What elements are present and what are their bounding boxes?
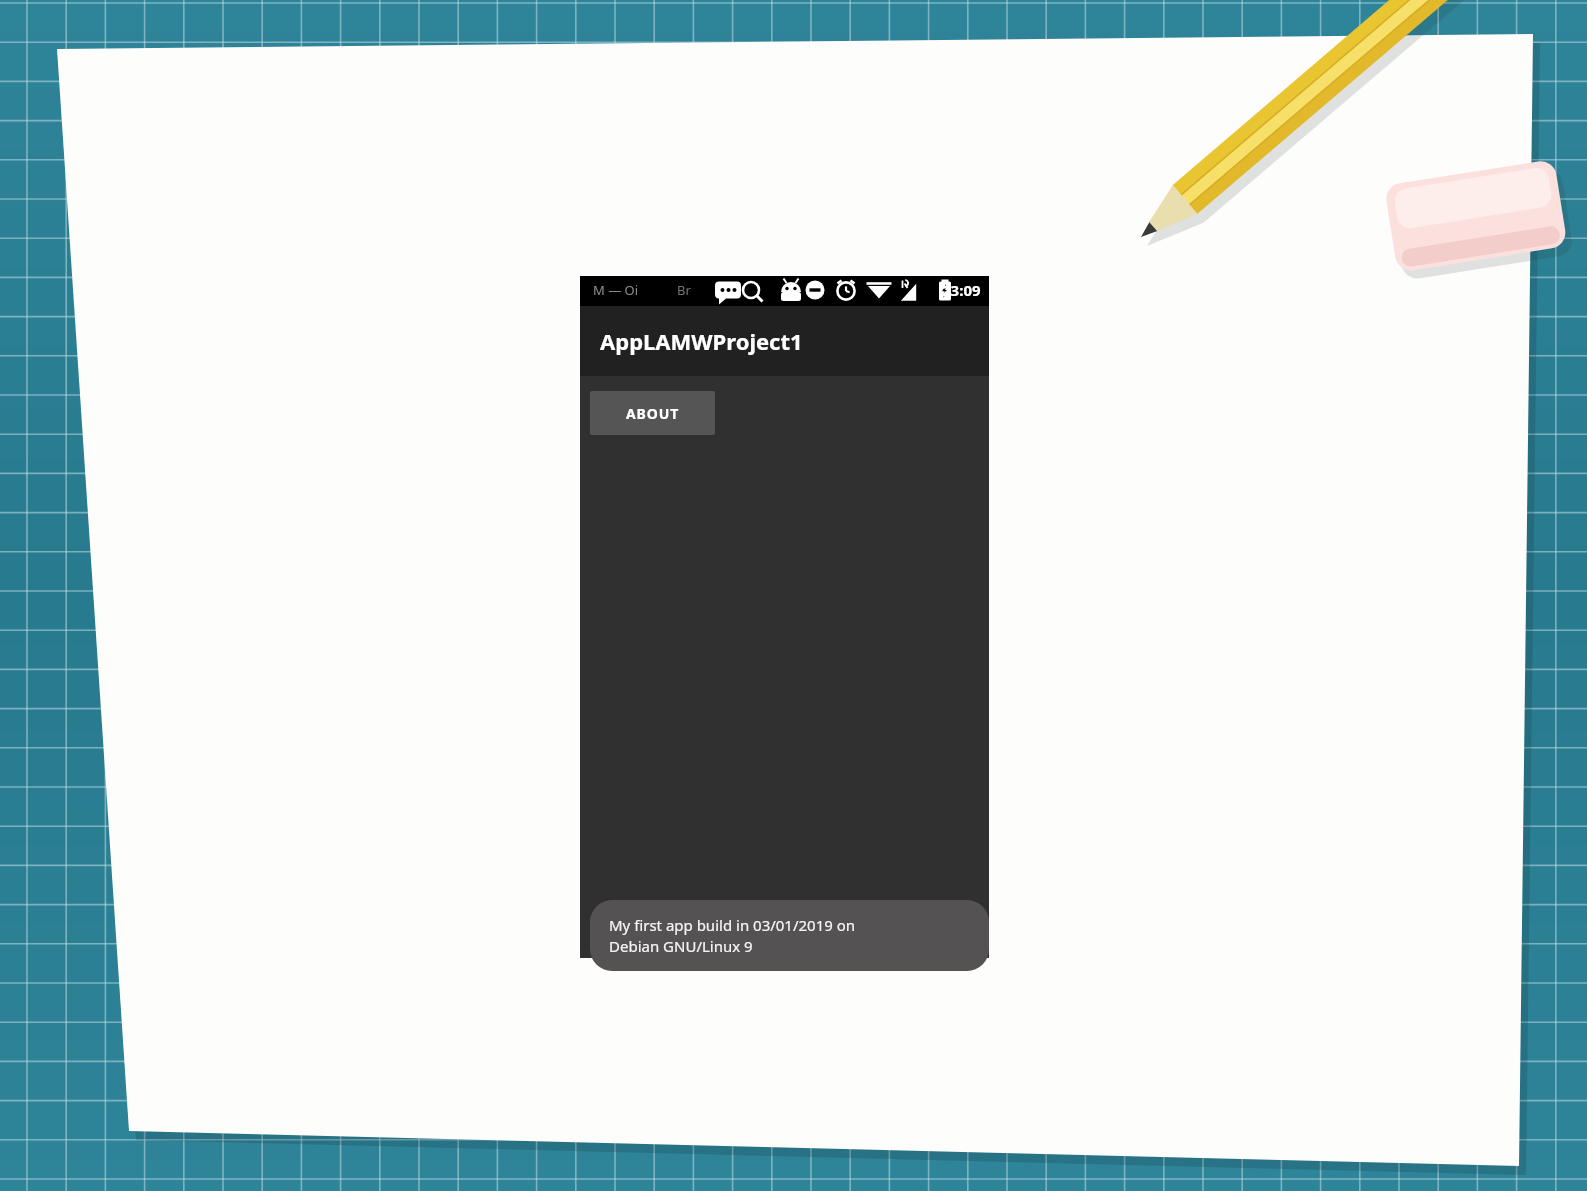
- staticText: My first app build in 03/01/2019 on Debi…: [609, 915, 856, 957]
- staticText: ABOUT: [626, 404, 680, 423]
- button[interactable]: ABOUT: [590, 391, 715, 435]
- staticText: 23:09: [942, 280, 981, 300]
- staticText: Br: [677, 281, 691, 299]
- staticText: M — Oi: [593, 281, 639, 299]
- staticText: AppLAMWProject1: [600, 326, 803, 356]
- button[interactable]: My first app build in 03/01/2019 on Debi…: [590, 900, 989, 971]
